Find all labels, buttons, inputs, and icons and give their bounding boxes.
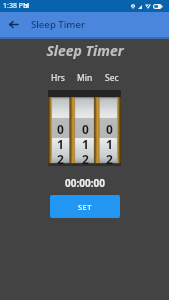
staticText: 1 [106,136,113,151]
button[interactable]: Back [0,12,27,37]
staticText: 2 [106,151,113,166]
staticText: 2 [57,151,64,166]
staticText: Sleep Timer [46,41,124,60]
staticText: 2 [82,151,89,166]
button[interactable]: 0 [73,90,97,166]
staticText: Sec [105,72,119,84]
staticText: 1:38 PM [3,1,30,11]
staticText: 0 [82,121,89,136]
staticText: Sleep Timer [31,18,85,31]
button[interactable]: 0 [97,90,121,166]
staticText: SET [78,202,92,212]
staticText: 0 [57,121,64,136]
staticText: 0 [106,121,113,136]
button[interactable]: 0 [48,90,73,166]
staticText: 00:00:00 [65,176,105,190]
staticText: Min [77,72,93,84]
staticText: Hrs [51,72,65,84]
staticText: 1 [57,136,64,151]
button[interactable]: SET [50,195,120,218]
staticText: 1 [82,136,89,151]
